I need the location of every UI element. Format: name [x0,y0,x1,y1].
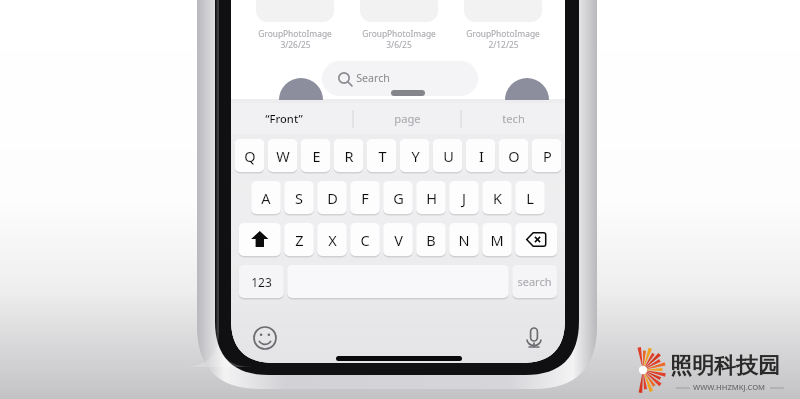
staticText: D [327,188,338,208]
staticText: T [378,146,387,166]
button[interactable]: Q [235,139,265,172]
staticText: Search [356,71,390,85]
staticText: GroupPhotoImage [258,28,332,39]
staticText: search [517,274,552,289]
button[interactable]: K [482,181,512,214]
button[interactable]: Dictation [520,324,548,352]
button[interactable]: P [532,139,562,172]
button[interactable]: M [482,223,512,256]
button[interactable]: Search [356,69,446,87]
button[interactable]: S [284,181,314,214]
staticText: tech [502,111,525,126]
staticText: GroupPhotoImage [362,28,436,39]
button[interactable]: J [449,181,479,214]
staticText: U [443,146,454,166]
staticText: Q [244,146,256,166]
staticText: GroupPhotoImage [466,28,540,39]
staticText: L [526,188,534,208]
button[interactable]: Z [284,223,314,256]
button[interactable]: A [251,181,281,214]
staticText: 123 [251,274,272,290]
staticText: X [328,230,337,250]
staticText: K [493,188,502,208]
button[interactable]: H [416,181,446,214]
staticText: A [261,188,271,208]
staticText: page [394,111,421,126]
button[interactable]: Emoji keyboard [251,324,279,352]
button[interactable]: page [355,104,459,133]
staticText: R [344,146,354,166]
button[interactable]: W [268,139,298,172]
staticText: C [360,230,370,250]
staticText: I [479,146,484,166]
button[interactable]: search [512,265,557,298]
staticText: E [312,146,321,166]
button[interactable]: GroupPhotoImage [453,28,553,54]
staticText: Z [295,230,304,250]
button[interactable]: V [383,223,413,256]
staticText: J [462,188,466,208]
button[interactable]: E [301,139,331,172]
staticText: Y [411,146,420,166]
staticText: 照明科技园 [670,352,780,380]
button[interactable]: Y [400,139,430,172]
button[interactable]: F [350,181,380,214]
button[interactable]: 123 [239,265,284,298]
button[interactable]: D [317,181,347,214]
button[interactable]: N [449,223,479,256]
staticText: 3/26/25 [280,39,311,50]
button[interactable]: X [317,223,347,256]
button[interactable]: Shift [239,223,281,256]
button[interactable]: B [416,223,446,256]
button[interactable]: O [499,139,529,172]
button[interactable]: I [466,139,496,172]
staticText: WWW.HHZMKJ.COM [693,382,766,392]
button[interactable]: “Front” [265,104,351,133]
staticText: F [361,188,369,208]
button[interactable]: GroupPhotoImage [245,28,345,54]
button[interactable]: Backspace [515,223,557,256]
button[interactable]: R [334,139,364,172]
staticText: B [426,230,436,250]
button[interactable]: tech [463,104,563,133]
button[interactable] [322,61,478,96]
staticText: S [295,188,303,208]
staticText: P [543,146,552,166]
staticText: H [426,188,437,208]
staticText: O [508,146,520,166]
staticText: G [393,188,404,208]
staticText: V [394,230,403,250]
button[interactable]: GroupPhotoImage [349,28,449,54]
button[interactable]: L [515,181,545,214]
staticText: W [276,146,290,166]
staticText: N [458,230,470,250]
staticText: M [490,230,504,250]
button[interactable]: G [383,181,413,214]
button[interactable]: T [367,139,397,172]
button[interactable]: C [350,223,380,256]
button[interactable]: U [433,139,463,172]
staticText: “Front” [265,111,303,126]
staticText: 3/6/25 [386,39,412,50]
staticText: 2/12/25 [488,39,519,50]
